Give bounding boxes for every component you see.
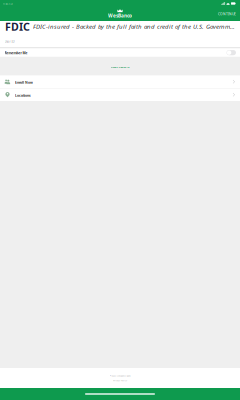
staticText: WesBanco (108, 12, 132, 19)
staticText: Remember Me (4, 51, 27, 55)
staticText: ©2023 WesBanco Bank (109, 374, 130, 377)
button[interactable]: Locations (0, 88, 240, 101)
staticText: Locations (15, 93, 31, 98)
staticText: User ID (4, 39, 14, 43)
staticText: FDIC-insured - Backed by the full faith … (33, 22, 237, 31)
staticText: Enroll Now (15, 80, 33, 85)
button[interactable]: Remember Me (0, 48, 240, 57)
staticText: Trouble signing in? (110, 65, 129, 69)
staticText: 11:30 AM (2, 2, 12, 5)
staticText: CONTINUE (218, 12, 236, 16)
button[interactable]: Enroll Now (0, 75, 240, 88)
button[interactable]: Privacy Policy (113, 379, 127, 382)
button[interactable]: CONTINUE (214, 10, 240, 18)
staticText: FDIC (5, 19, 30, 34)
staticText: Privacy Policy (113, 379, 127, 382)
button[interactable]: Trouble signing in? (0, 57, 240, 75)
